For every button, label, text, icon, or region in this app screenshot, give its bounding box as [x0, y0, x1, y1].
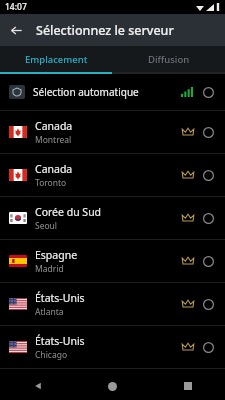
staticText: Sélection automatique [33, 85, 139, 99]
button[interactable]: Add to favorites [180, 210, 196, 226]
button[interactable]: Select server [200, 339, 216, 355]
button[interactable]: États-Unis [0, 326, 225, 368]
staticText: Seoul [35, 220, 58, 232]
button[interactable]: Diffusion [112, 46, 225, 72]
staticText: Diffusion [148, 53, 190, 66]
button[interactable]: Canada [0, 154, 225, 196]
staticText: États-Unis [35, 291, 85, 305]
button[interactable]: Espagne [0, 240, 225, 282]
staticText: 14:07 [5, 1, 27, 13]
button[interactable]: États-Unis [0, 283, 225, 325]
button[interactable]: Add to favorites [180, 167, 196, 183]
staticText: Toronto [35, 177, 67, 189]
staticText: Chicago [35, 349, 68, 361]
staticText: Atlanta [35, 306, 64, 318]
staticText: Canada [35, 119, 73, 133]
staticText: États-Unis [35, 334, 85, 348]
staticText: Corée du Sud [35, 205, 102, 219]
button[interactable]: Sélection automatique [0, 74, 225, 110]
staticText: Madrid [35, 263, 64, 275]
button[interactable]: Select server [200, 84, 216, 100]
button[interactable]: Add to favorites [180, 124, 196, 140]
staticText: Emplacement [25, 53, 88, 66]
button[interactable]: Select server [200, 167, 216, 183]
button[interactable]: Select server [200, 210, 216, 226]
staticText: Montreal [35, 134, 72, 146]
staticText: Sélectionnez le serveur [36, 22, 174, 39]
button[interactable]: Back [0, 372, 75, 400]
button[interactable]: Select server [200, 296, 216, 312]
button[interactable]: Select server [200, 124, 216, 140]
button[interactable]: Home [75, 372, 150, 400]
staticText: Espagne [35, 248, 78, 262]
button[interactable]: Recent apps [150, 372, 225, 400]
button[interactable]: Back [0, 14, 32, 46]
button[interactable]: Corée du Sud [0, 197, 225, 239]
button[interactable]: Select server [200, 253, 216, 269]
staticText: Canada [35, 162, 73, 176]
button[interactable]: Add to favorites [180, 296, 196, 312]
button[interactable]: Add to favorites [180, 253, 196, 269]
button[interactable]: Add to favorites [180, 339, 196, 355]
button[interactable]: Emplacement [0, 46, 112, 72]
button[interactable]: Canada [0, 111, 225, 153]
